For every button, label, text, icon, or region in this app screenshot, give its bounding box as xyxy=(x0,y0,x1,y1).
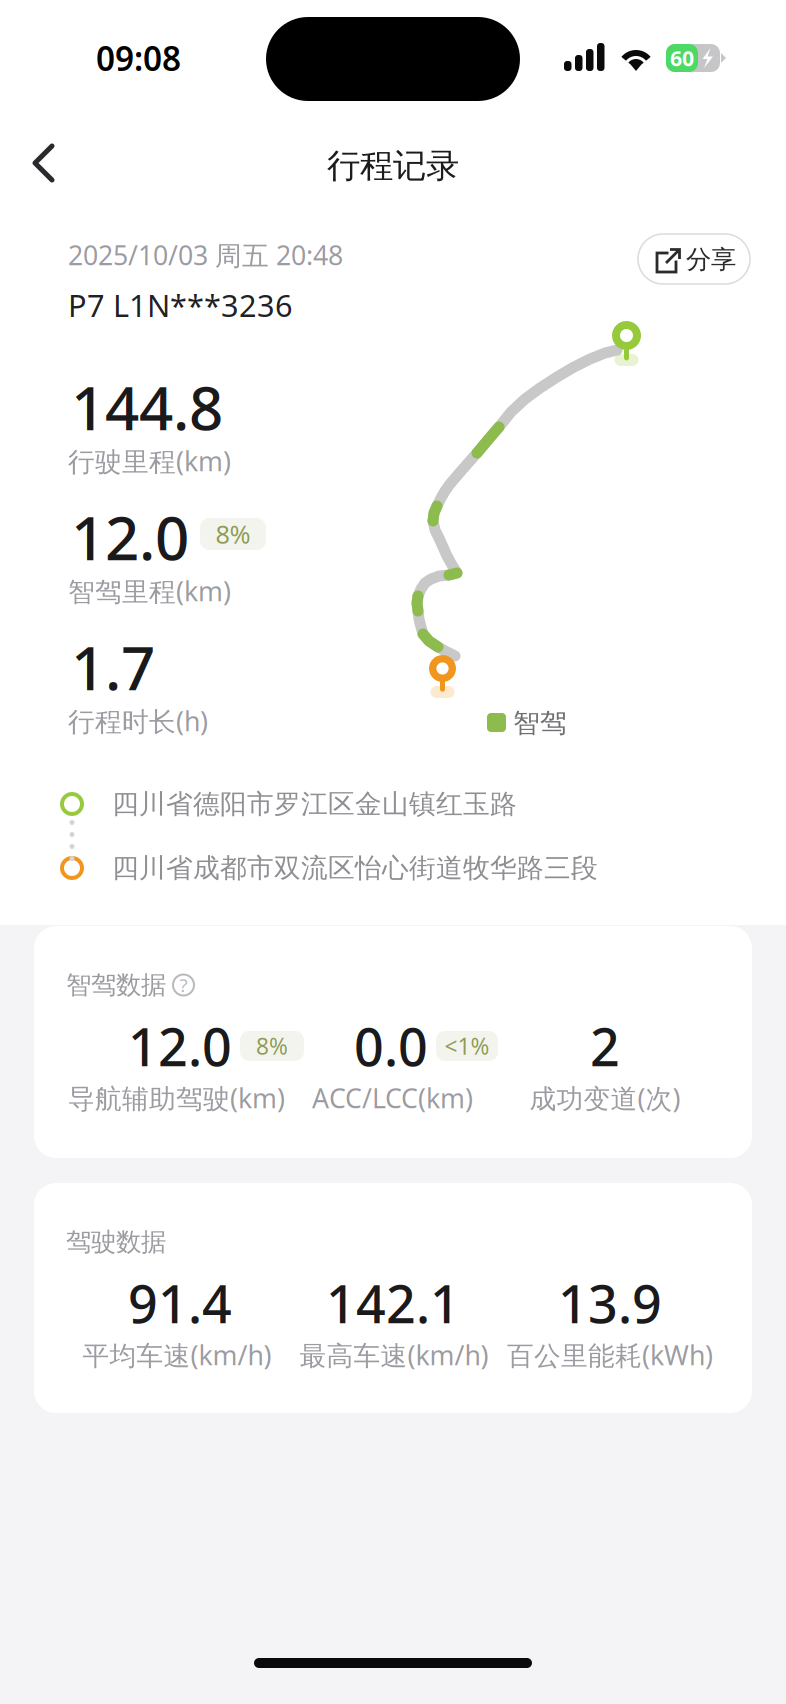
staticText: 8% xyxy=(215,517,250,551)
staticText: 2 xyxy=(590,1011,620,1081)
staticText: 行驶里程(km) xyxy=(68,443,231,479)
staticText: 行程时长(h) xyxy=(68,703,208,739)
staticText: 四川省德阳市罗江区金山镇红玉路 xyxy=(112,788,517,820)
staticText: 60 xyxy=(670,44,694,72)
button[interactable]: 分享 xyxy=(638,234,750,284)
staticText: <1% xyxy=(444,1031,489,1061)
staticText: 8% xyxy=(256,1031,288,1061)
staticText: 智驾里程(km) xyxy=(68,573,231,609)
staticText: ACC/LCC(km) xyxy=(312,1080,473,1116)
staticText: 智驾 xyxy=(513,707,567,739)
staticText: 2025/10/03 周五 20:48 xyxy=(68,237,343,273)
staticText: 1.7 xyxy=(71,627,155,707)
staticText: 平均车速(km/h) xyxy=(82,1337,271,1373)
staticText: 12.0 xyxy=(71,497,189,577)
staticText: 142.1 xyxy=(326,1268,460,1338)
staticText: 09:08 xyxy=(96,36,181,80)
staticText: 成功变道(次) xyxy=(529,1080,680,1116)
staticText: 分享 xyxy=(686,244,736,275)
staticText: 91.4 xyxy=(128,1268,232,1338)
button[interactable]: Back xyxy=(30,124,108,202)
staticText: 13.9 xyxy=(558,1268,662,1338)
staticText: 行程记录 xyxy=(327,145,459,186)
staticText: 智驾数据 xyxy=(66,969,166,1000)
staticText: 驾驶数据 xyxy=(66,1226,166,1257)
staticText: ? xyxy=(179,973,187,997)
staticText: 四川省成都市双流区怡心街道牧华路三段 xyxy=(112,852,598,884)
staticText: P7 L1N***3236 xyxy=(68,285,293,325)
staticText: 12.0 xyxy=(128,1011,232,1081)
staticText: 最高车速(km/h) xyxy=(299,1337,488,1373)
staticText: 导航辅助驾驶(km) xyxy=(68,1080,285,1116)
staticText: 百公里能耗(kWh) xyxy=(507,1337,713,1373)
staticText: 144.8 xyxy=(71,367,223,447)
staticText: 0.0 xyxy=(354,1011,428,1081)
